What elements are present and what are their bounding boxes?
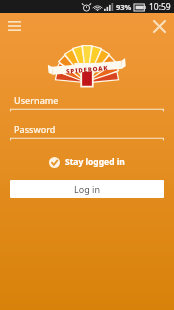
staticText: Stay logged in xyxy=(65,156,125,168)
staticText: Log in xyxy=(74,183,100,195)
button[interactable]: Password xyxy=(10,123,164,141)
staticText: SPIDEROAK xyxy=(66,63,109,75)
staticText: 93% xyxy=(116,2,132,12)
button[interactable]: Close xyxy=(149,16,169,36)
staticText: Password xyxy=(14,123,56,135)
staticText: 10:59 xyxy=(149,1,171,13)
button[interactable]: Log in xyxy=(10,180,164,198)
button[interactable]: Stay logged in xyxy=(45,154,129,170)
button[interactable]: Menu xyxy=(4,16,24,36)
staticText: Username xyxy=(14,94,59,106)
button[interactable]: Username xyxy=(10,94,164,112)
